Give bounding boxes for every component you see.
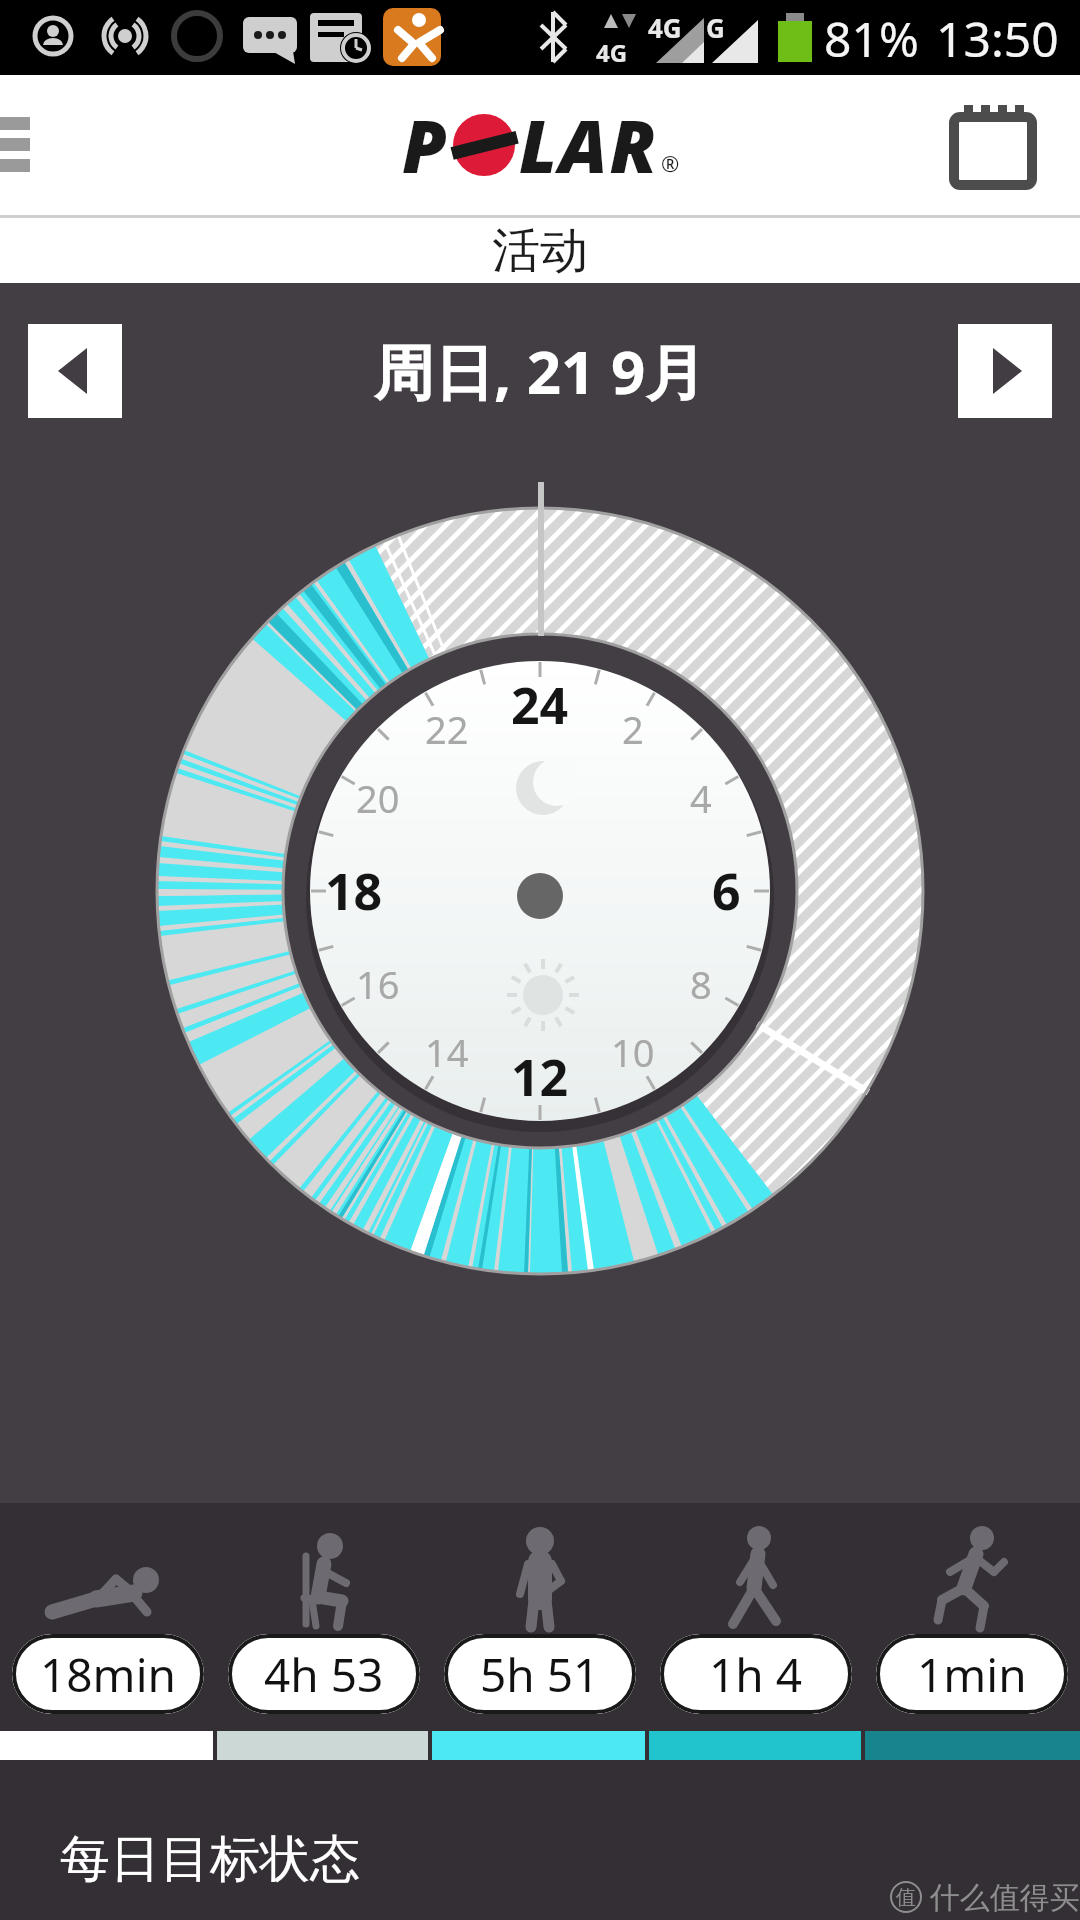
staticText: 2 xyxy=(622,703,644,755)
staticText: ® xyxy=(661,148,680,178)
staticText: 4G xyxy=(648,10,682,45)
button[interactable] xyxy=(28,324,122,418)
staticText: 16 xyxy=(356,958,400,1010)
staticText: 10 xyxy=(611,1026,655,1078)
button[interactable] xyxy=(958,324,1052,418)
staticText: 13:50 xyxy=(936,6,1059,71)
staticText: 什么值得买 xyxy=(922,1876,1080,1917)
button[interactable]: 18min xyxy=(12,1634,204,1714)
button[interactable] xyxy=(0,117,34,177)
staticText: 14 xyxy=(425,1026,469,1078)
staticText: 5h 51 xyxy=(480,1643,600,1706)
staticText: 18 xyxy=(325,857,383,925)
staticText: 4 xyxy=(690,772,712,824)
button[interactable]: 4h 53 xyxy=(228,1634,420,1714)
staticText: 22 xyxy=(425,703,469,755)
button[interactable]: 1h 4 xyxy=(660,1634,852,1714)
staticText: 值 xyxy=(896,1885,916,1910)
staticText: LAR xyxy=(519,96,659,194)
staticText: 1h 4 xyxy=(709,1643,803,1706)
staticText: 周日, 21 9月 xyxy=(374,330,706,412)
staticText: 活动 xyxy=(492,221,588,281)
staticText: P xyxy=(402,96,449,194)
button[interactable]: 5h 51 xyxy=(444,1634,636,1714)
staticText: 1min xyxy=(917,1643,1027,1706)
staticText: 6 xyxy=(712,857,741,925)
staticText: 每日目标状态 xyxy=(60,1828,360,1891)
button[interactable]: 1min xyxy=(876,1634,1068,1714)
staticText: 4h 53 xyxy=(264,1643,384,1706)
staticText: 81% xyxy=(824,6,919,71)
staticText: 8 xyxy=(690,958,712,1010)
staticText: 12 xyxy=(511,1043,569,1111)
staticText: 4G xyxy=(596,36,628,69)
staticText: G xyxy=(706,10,725,45)
staticText: 20 xyxy=(356,772,400,824)
staticText: 18min xyxy=(40,1643,176,1706)
staticText: 24 xyxy=(511,671,569,739)
button[interactable] xyxy=(952,103,1037,188)
